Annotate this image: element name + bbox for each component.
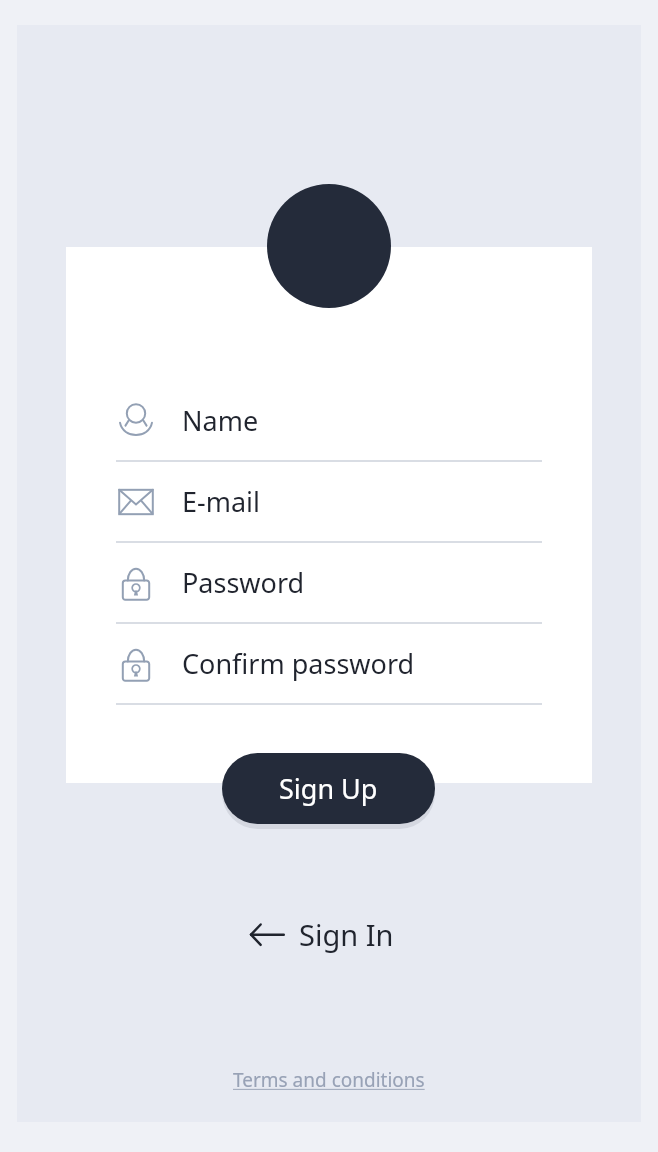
staticText: Name <box>182 402 259 439</box>
staticText: Confirm password <box>182 645 415 682</box>
button[interactable]: Sign Up <box>222 753 435 824</box>
staticText: Password <box>182 564 305 601</box>
staticText: E-mail <box>182 483 261 520</box>
button[interactable]: Terms and conditions <box>233 1067 425 1093</box>
button[interactable]: Back to Sign In <box>247 905 394 963</box>
staticText: Sign Up <box>279 770 378 807</box>
button[interactable]: E-mail <box>116 462 542 543</box>
button[interactable]: Name <box>116 381 542 462</box>
other: Back to Sign In <box>247 917 287 951</box>
button[interactable]: Password <box>116 543 542 624</box>
staticText: Sign In <box>299 915 394 954</box>
staticText: Terms and conditions <box>233 1067 425 1093</box>
button[interactable]: Confirm password <box>116 624 542 705</box>
